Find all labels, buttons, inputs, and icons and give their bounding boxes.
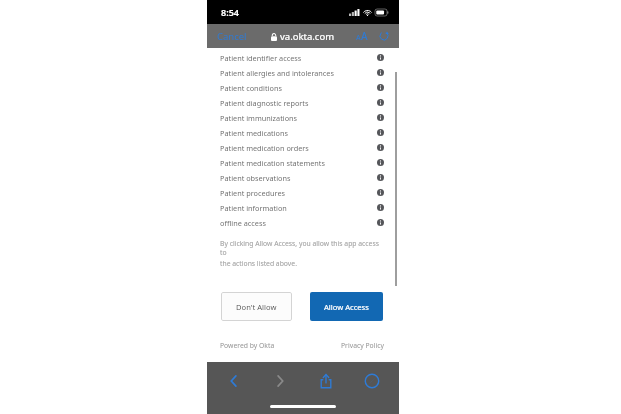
staticText: Patient observations — [220, 173, 291, 183]
button[interactable]: More information — [377, 189, 384, 196]
staticText: 8:54 — [221, 6, 239, 18]
staticText: Patient procedures — [220, 188, 286, 198]
staticText: Patient information — [220, 203, 287, 213]
button[interactable]: More information — [377, 204, 384, 211]
button[interactable]: More information — [377, 129, 384, 136]
staticText: offline access — [220, 218, 266, 228]
button[interactable]: More information — [377, 84, 384, 91]
staticText: Patient medications — [220, 128, 289, 138]
staticText: Cancel — [217, 30, 247, 43]
staticText: By clicking Allow Access, you allow this… — [220, 239, 384, 257]
staticText: Patient identifier access — [220, 53, 302, 63]
button[interactable]: Allow Access — [310, 292, 383, 321]
button[interactable]: Cancel — [207, 26, 257, 47]
button[interactable]: Browser tabs — [355, 370, 389, 392]
button[interactable]: More information — [377, 174, 384, 181]
staticText: Patient medication orders — [220, 143, 309, 153]
button[interactable]: Patient information — [207, 200, 399, 215]
button[interactable]: offline access — [207, 215, 399, 230]
button[interactable]: Privacy Policy — [341, 341, 384, 350]
button[interactable]: More information — [377, 114, 384, 121]
button[interactable]: Patient conditions — [207, 80, 399, 95]
button[interactable]: More information — [377, 159, 384, 166]
staticText: Privacy Policy — [341, 341, 384, 350]
button[interactable]: Don't Allow — [221, 292, 292, 321]
button[interactable]: Patient allergies and intolerances — [207, 65, 399, 80]
button[interactable]: More information — [377, 69, 384, 76]
staticText: Patient allergies and intolerances — [220, 68, 334, 78]
button[interactable]: Patient diagnostic reports — [207, 95, 399, 110]
staticText: the actions listed above. — [220, 259, 297, 268]
staticText: A — [356, 33, 361, 43]
button[interactable]: More information — [377, 219, 384, 226]
button[interactable]: Patient identifier access — [207, 50, 399, 65]
button[interactable]: More information — [377, 144, 384, 151]
button[interactable]: More information — [377, 54, 384, 61]
staticText: Allow Access — [324, 302, 369, 312]
button[interactable]: Back — [217, 370, 251, 392]
button[interactable]: Powered by Okta — [220, 341, 275, 350]
staticText: Patient conditions — [220, 83, 282, 93]
button[interactable]: Patient observations — [207, 170, 399, 185]
staticText: A — [361, 29, 368, 43]
button[interactable]: Forward — [263, 370, 297, 392]
button[interactable]: Patient medication statements — [207, 155, 399, 170]
staticText: Powered by Okta — [220, 341, 275, 350]
button[interactable]: Patient medication orders — [207, 140, 399, 155]
staticText: Patient medication statements — [220, 158, 325, 168]
staticText: Patient diagnostic reports — [220, 98, 309, 108]
staticText: Patient immunizations — [220, 113, 298, 123]
button[interactable]: Patient medications — [207, 125, 399, 140]
staticText: va.okta.com — [280, 30, 335, 43]
button[interactable]: Patient immunizations — [207, 110, 399, 125]
button[interactable]: Reload page — [376, 28, 392, 44]
button[interactable]: Text size options — [353, 26, 371, 46]
button[interactable]: Share — [309, 370, 343, 392]
staticText: Don't Allow — [236, 302, 277, 312]
button[interactable]: More information — [377, 99, 384, 106]
button[interactable]: Patient procedures — [207, 185, 399, 200]
